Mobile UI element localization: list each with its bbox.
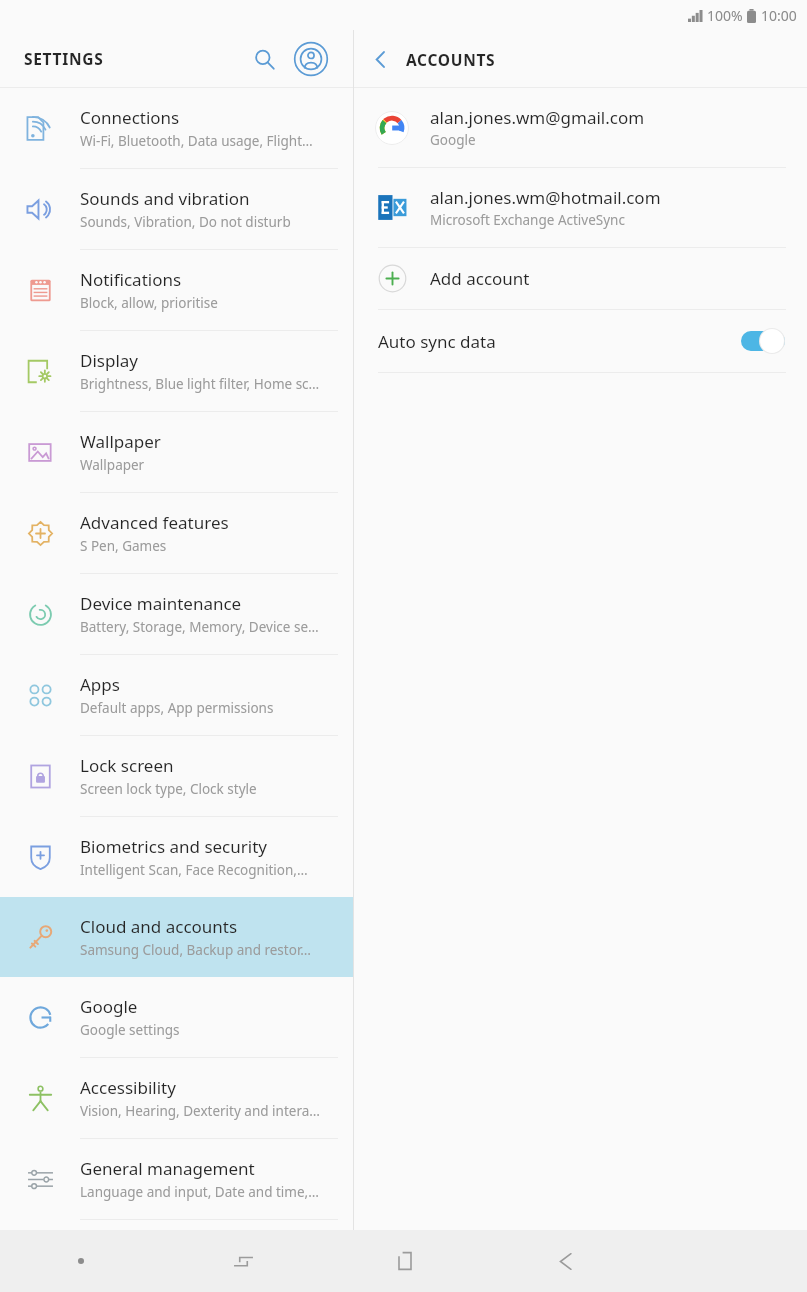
staticText: Brightness, Blue light filter, Home sc… — [80, 375, 320, 393]
button[interactable]: alan.jones.wm@gmail.com — [354, 88, 807, 167]
button[interactable]: Biometrics and security — [0, 817, 353, 897]
button[interactable]: Back — [485, 1230, 646, 1292]
staticText: Sounds and vibration — [80, 187, 250, 210]
staticText: Screen lock type, Clock style — [80, 780, 257, 798]
button[interactable]: Accessibility — [0, 1058, 353, 1138]
staticText: Google — [80, 995, 138, 1018]
staticText: Advanced features — [80, 511, 229, 534]
staticText: Vision, Hearing, Dexterity and intera… — [80, 1102, 320, 1120]
staticText: Biometrics and security — [80, 835, 267, 858]
button[interactable]: Notifications — [0, 250, 353, 330]
staticText: Accessibility — [80, 1076, 176, 1099]
staticText: Samsung Cloud, Backup and restor… — [80, 941, 311, 959]
staticText: SETTINGS — [24, 48, 104, 69]
staticText: Microsoft Exchange ActiveSync — [430, 211, 625, 229]
button[interactable]: Auto sync data — [354, 310, 807, 372]
button[interactable]: Connections — [0, 88, 353, 168]
staticText: Display — [80, 349, 138, 372]
staticText: General management — [80, 1157, 255, 1180]
button[interactable]: Cloud and accounts — [0, 897, 353, 977]
staticText: Wallpaper — [80, 456, 145, 474]
button[interactable]: Advanced features — [0, 493, 353, 573]
button[interactable]: Apps — [0, 655, 353, 735]
staticText: alan.jones.wm@hotmail.com — [430, 186, 661, 209]
button[interactable]: Lock screen — [0, 736, 353, 816]
staticText: Block, allow, prioritise — [80, 294, 218, 312]
staticText: S Pen, Games — [80, 537, 167, 555]
staticText: Default apps, App permissions — [80, 699, 274, 717]
staticText: Connections — [80, 106, 180, 129]
staticText: Device maintenance — [80, 592, 242, 615]
button[interactable]: Search — [243, 38, 285, 80]
staticText: Auto sync data — [378, 330, 741, 353]
button[interactable]: Wallpaper — [0, 412, 353, 492]
staticText: 100% — [707, 6, 743, 25]
button[interactable]: Google — [0, 977, 353, 1057]
staticText: 10:00 — [761, 6, 797, 25]
button[interactable]: Recents — [162, 1230, 324, 1292]
staticText: ACCOUNTS — [406, 49, 496, 70]
staticText: Intelligent Scan, Face Recognition,… — [80, 861, 308, 879]
staticText: Notifications — [80, 268, 182, 291]
staticText: Cloud and accounts — [80, 915, 238, 938]
staticText: Apps — [80, 673, 120, 696]
button[interactable]: Profile — [289, 37, 333, 81]
button[interactable]: Device maintenance — [0, 574, 353, 654]
staticText: Wallpaper — [80, 430, 161, 453]
button[interactable]: alan.jones.wm@hotmail.com — [354, 168, 807, 247]
staticText: Language and input, Date and time,… — [80, 1183, 319, 1201]
button[interactable]: Back — [354, 33, 406, 85]
staticText: Lock screen — [80, 754, 174, 777]
staticText: Google — [430, 131, 476, 149]
button[interactable]: Home — [324, 1230, 485, 1292]
button[interactable]: General management — [0, 1139, 353, 1219]
staticText: Wi-Fi, Bluetooth, Data usage, Flight… — [80, 132, 313, 150]
button[interactable]: Display — [0, 331, 353, 411]
staticText: Battery, Storage, Memory, Device se… — [80, 618, 319, 636]
staticText: alan.jones.wm@gmail.com — [430, 106, 645, 129]
button[interactable]: Sounds and vibration — [0, 169, 353, 249]
button[interactable]: Add account — [354, 248, 807, 309]
staticText: Google settings — [80, 1021, 180, 1039]
staticText: Sounds, Vibration, Do not disturb — [80, 213, 291, 231]
staticText: Add account — [430, 267, 530, 290]
